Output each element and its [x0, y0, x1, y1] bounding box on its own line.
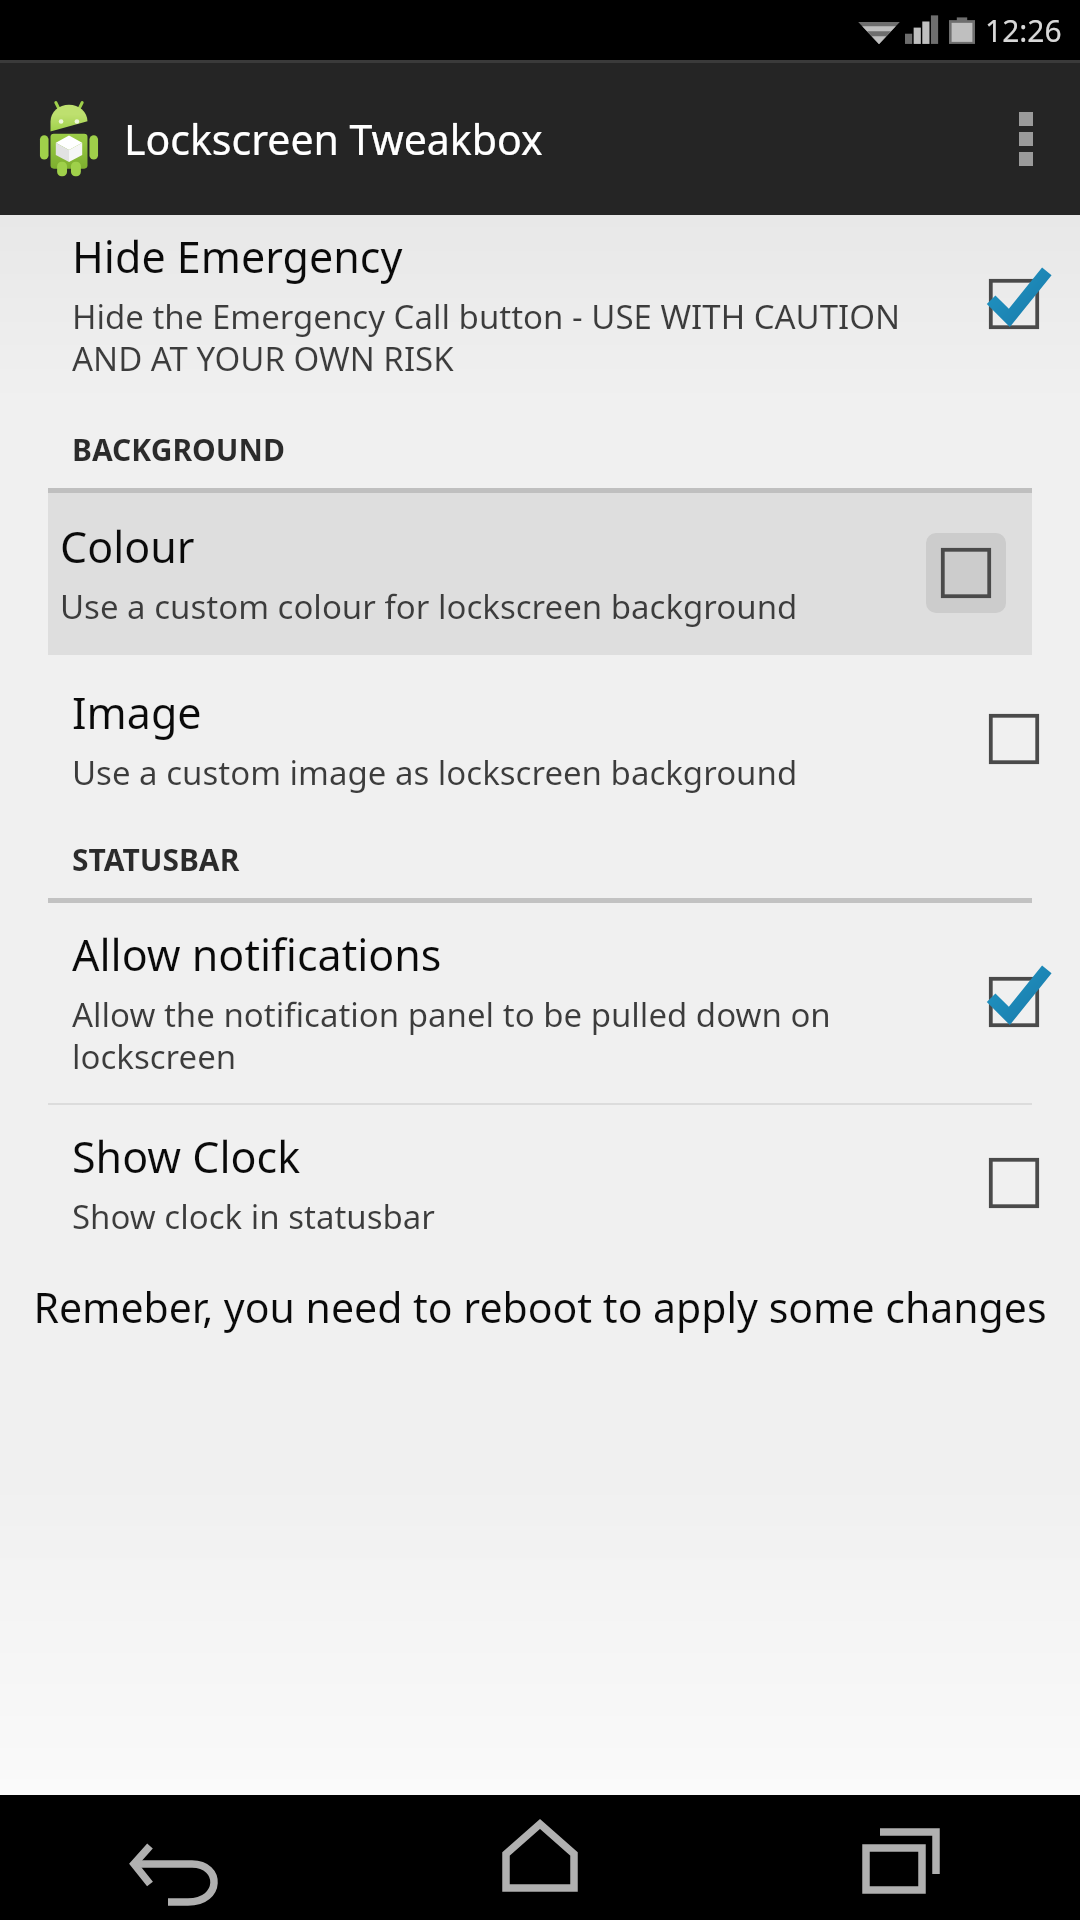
button[interactable]: Show Clock	[0, 1105, 1080, 1257]
staticText: 12:26	[985, 10, 1062, 51]
button[interactable]: Back	[0, 1795, 360, 1920]
button[interactable]: Unchecked	[966, 1135, 1062, 1231]
button[interactable]: More options	[972, 63, 1080, 215]
staticText: Image	[72, 683, 202, 742]
button[interactable]: Checked	[966, 954, 1062, 1050]
staticText: Hide the Emergency Call button - USE WIT…	[72, 294, 942, 381]
staticText: Hide Emergency	[72, 227, 403, 286]
button[interactable]: Colour	[48, 493, 1032, 655]
button[interactable]: Allow notifications	[0, 903, 1080, 1103]
staticText: Allow notifications	[72, 925, 442, 984]
staticText: Use a custom colour for lockscreen backg…	[60, 584, 798, 629]
staticText: Lockscreen Tweakbox	[124, 111, 543, 167]
staticText: Allow the notification panel to be pulle…	[72, 992, 942, 1079]
button[interactable]: Home	[360, 1795, 720, 1920]
staticText: Remeber, you need to reboot to apply som…	[18, 1279, 1062, 1335]
button[interactable]: Unchecked	[966, 691, 1062, 787]
staticText: Colour	[60, 517, 195, 576]
staticText: Show Clock	[72, 1127, 301, 1186]
staticText: Show clock in statusbar	[72, 1194, 435, 1239]
staticText: BACKGROUND	[72, 429, 285, 470]
staticText: Use a custom image as lockscreen backgro…	[72, 750, 798, 795]
button[interactable]: Image	[0, 671, 1080, 817]
staticText: STATUSBAR	[72, 839, 240, 880]
button[interactable]: Checked	[966, 256, 1062, 352]
button[interactable]: Hide Emergency	[0, 215, 1080, 407]
button[interactable]: Recents	[720, 1795, 1080, 1920]
button[interactable]: Unchecked	[918, 525, 1014, 621]
